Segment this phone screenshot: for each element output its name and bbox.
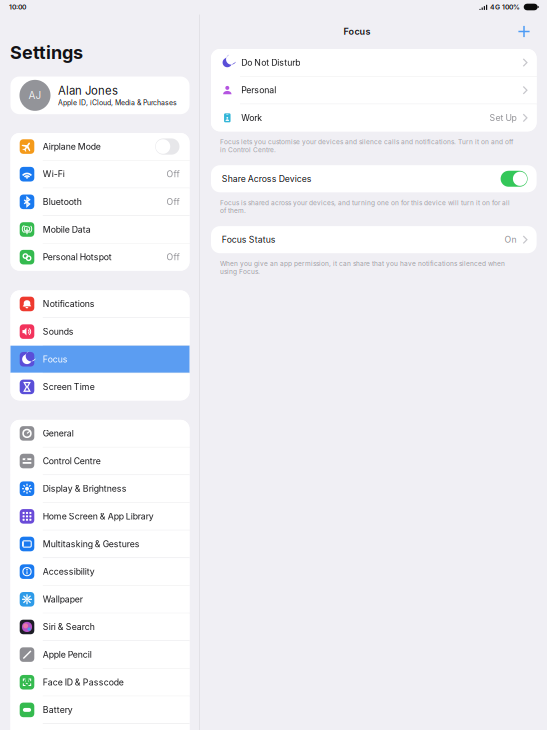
- button[interactable]: Work: [211, 104, 537, 131]
- staticText: Battery: [43, 705, 73, 715]
- staticText: Focus: [43, 354, 68, 364]
- staticText: 10:00: [9, 3, 26, 11]
- button[interactable]: Do Not Disturb: [211, 49, 537, 76]
- staticText: Control Centre: [43, 456, 101, 466]
- staticText: Personal: [241, 85, 276, 95]
- staticText: Apple Pencil: [43, 649, 92, 660]
- staticText: Focus Status: [222, 234, 276, 245]
- staticText: Wi-Fi: [43, 169, 65, 179]
- button[interactable]: Sounds: [10, 318, 189, 345]
- button[interactable]: Bluetooth: [10, 188, 189, 215]
- button[interactable]: Apple Pencil: [10, 641, 189, 668]
- button[interactable]: Wi-Fi: [10, 161, 189, 188]
- button[interactable]: Personal: [211, 77, 537, 104]
- staticText: Do Not Disturb: [241, 57, 300, 68]
- staticText: Focus: [343, 26, 370, 37]
- button[interactable]: Focus Status: [211, 226, 537, 253]
- staticText: Set Up: [490, 113, 517, 123]
- staticText: General: [43, 428, 74, 439]
- staticText: Wallpaper: [43, 594, 83, 605]
- button[interactable]: Siri & Search: [10, 613, 189, 640]
- staticText: Screen Time: [43, 382, 95, 392]
- staticText: Off: [166, 169, 179, 179]
- staticText: On: [505, 234, 517, 245]
- button[interactable]: AJ: [10, 76, 189, 114]
- staticText: Siri & Search: [43, 622, 95, 632]
- staticText: Airplane Mode: [43, 141, 101, 152]
- staticText: Mobile Data: [43, 224, 91, 235]
- staticText: Off: [166, 197, 179, 207]
- staticText: Apple ID, iCloud, Media & Purchases: [58, 98, 177, 107]
- staticText: Face ID & Passcode: [43, 677, 124, 687]
- button[interactable]: Focus: [10, 346, 189, 373]
- button[interactable]: Home Screen & App Library: [10, 503, 189, 530]
- button[interactable]: Notifications: [10, 290, 189, 317]
- button[interactable]: Share Across Devices: [211, 165, 537, 192]
- button[interactable]: Personal Hotspot: [10, 244, 189, 271]
- button[interactable]: Mobile Data: [10, 216, 189, 243]
- staticText: Work: [241, 113, 262, 123]
- staticText: Share Across Devices: [222, 173, 312, 184]
- button[interactable]: Multitasking & Gestures: [10, 530, 189, 558]
- button[interactable]: Screen Time: [10, 373, 189, 400]
- staticText: Bluetooth: [43, 197, 82, 207]
- staticText: 4G 100%: [490, 3, 520, 11]
- staticText: AJ: [28, 89, 41, 101]
- button[interactable]: General: [10, 420, 189, 447]
- staticText: Multitasking & Gestures: [43, 539, 140, 549]
- staticText: Notifications: [43, 299, 95, 309]
- button[interactable]: Battery: [10, 696, 189, 723]
- staticText: Focus lets you customise your devices an…: [220, 138, 513, 154]
- staticText: Alan Jones: [58, 84, 118, 97]
- staticText: Display & Brightness: [43, 483, 127, 494]
- staticText: Home Screen & App Library: [43, 511, 154, 522]
- button[interactable]: Add Focus: [514, 21, 534, 41]
- staticText: Off: [166, 252, 179, 262]
- button[interactable]: Display & Brightness: [10, 475, 189, 502]
- button[interactable]: Face ID & Passcode: [10, 669, 189, 696]
- button[interactable]: Control Centre: [10, 447, 189, 475]
- staticText: Personal Hotspot: [43, 252, 112, 262]
- staticText: Focus is shared across your devices, and…: [220, 199, 510, 215]
- staticText: Sounds: [43, 326, 74, 337]
- staticText: Settings: [10, 42, 83, 63]
- staticText: When you give an app permission, it can …: [220, 260, 505, 275]
- button[interactable]: Airplane Mode: [10, 133, 189, 160]
- button[interactable]: Wallpaper: [10, 586, 189, 613]
- button[interactable]: Accessibility: [10, 558, 189, 585]
- staticText: Accessibility: [43, 566, 95, 577]
